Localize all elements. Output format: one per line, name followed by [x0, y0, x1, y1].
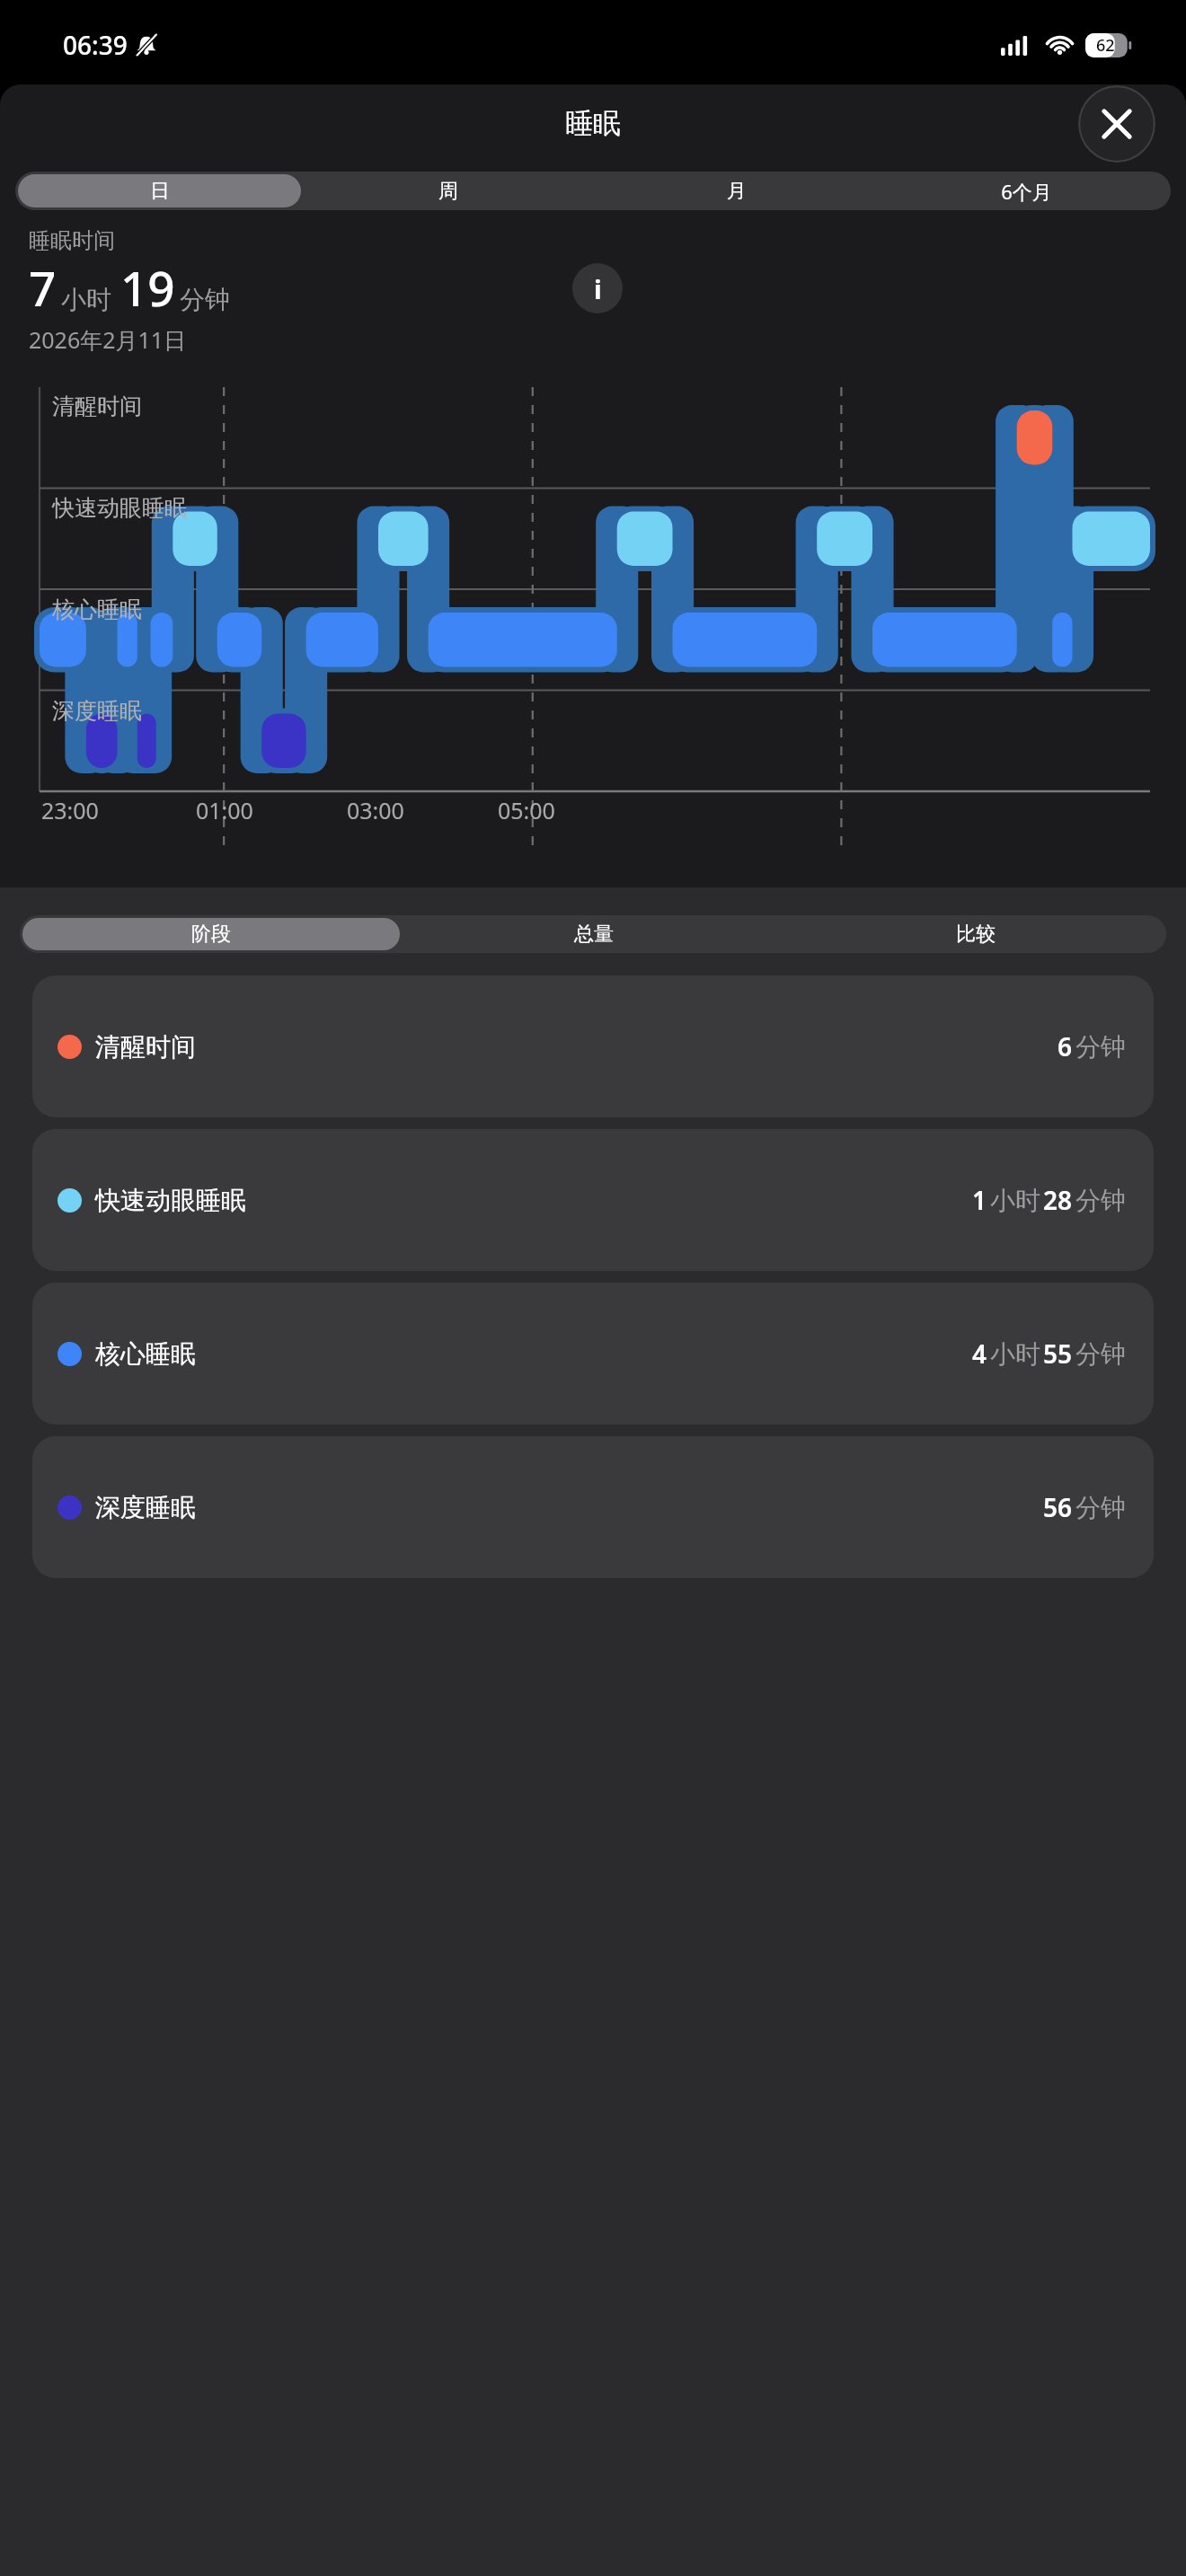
staticText: 01:00: [196, 795, 253, 825]
staticText: 核心睡眠: [52, 595, 142, 623]
staticText: 日: [150, 179, 170, 204]
button[interactable]: 深度睡眠: [32, 1436, 1154, 1578]
staticText: 06:39: [63, 28, 128, 62]
staticText: 23:00: [41, 795, 99, 825]
staticText: 6个月: [1001, 178, 1052, 205]
staticText: 深度睡眠: [52, 697, 142, 725]
staticText: 2026年2月11日: [29, 324, 187, 355]
button[interactable]: 总量: [405, 918, 782, 950]
staticText: 睡眠: [565, 106, 621, 141]
staticText: 28: [1043, 1183, 1073, 1217]
staticText: 比较: [956, 922, 996, 947]
staticText: 62: [1096, 34, 1115, 57]
staticText: 56: [1043, 1490, 1073, 1524]
staticText: 月: [727, 179, 747, 204]
staticText: 核心睡眠: [95, 1338, 196, 1370]
button[interactable]: 6个月: [884, 174, 1168, 207]
staticText: 6: [1058, 1029, 1073, 1063]
staticText: 分钟: [180, 284, 230, 315]
button[interactable]: 比较: [787, 918, 1164, 950]
staticText: 分钟: [1075, 1031, 1126, 1063]
staticText: 7: [29, 255, 57, 320]
staticText: 05:00: [498, 795, 555, 825]
button[interactable]: 信息: [572, 263, 623, 313]
staticText: 小时: [61, 284, 111, 315]
staticText: 分钟: [1075, 1185, 1126, 1216]
staticText: 清醒时间: [95, 1031, 196, 1063]
staticText: 小时: [990, 1338, 1040, 1370]
button[interactable]: 关闭: [1078, 85, 1155, 163]
staticText: 03:00: [347, 795, 404, 825]
staticText: 睡眠时间: [29, 227, 115, 254]
staticText: i: [594, 271, 602, 306]
staticText: 19: [120, 255, 175, 320]
staticText: 总量: [574, 922, 614, 947]
button[interactable]: 周: [306, 174, 589, 207]
button[interactable]: 快速动眼睡眠: [32, 1129, 1154, 1271]
button[interactable]: 阶段: [22, 918, 400, 950]
staticText: 周: [438, 179, 458, 204]
button[interactable]: 月: [595, 174, 879, 207]
staticText: 小时: [990, 1185, 1040, 1216]
staticText: 深度睡眠: [95, 1492, 196, 1523]
button[interactable]: 清醒时间: [32, 975, 1154, 1117]
staticText: 分钟: [1075, 1338, 1126, 1370]
staticText: 快速动眼睡眠: [52, 494, 187, 522]
staticText: 分钟: [1075, 1492, 1126, 1523]
staticText: 55: [1043, 1337, 1073, 1371]
button[interactable]: 核心睡眠: [32, 1283, 1154, 1425]
staticText: 4: [972, 1337, 987, 1371]
staticText: 阶段: [191, 922, 231, 947]
staticText: 清醒时间: [52, 393, 142, 420]
button[interactable]: 日: [18, 174, 301, 207]
staticText: 快速动眼睡眠: [95, 1185, 246, 1216]
staticText: 1: [972, 1183, 987, 1217]
